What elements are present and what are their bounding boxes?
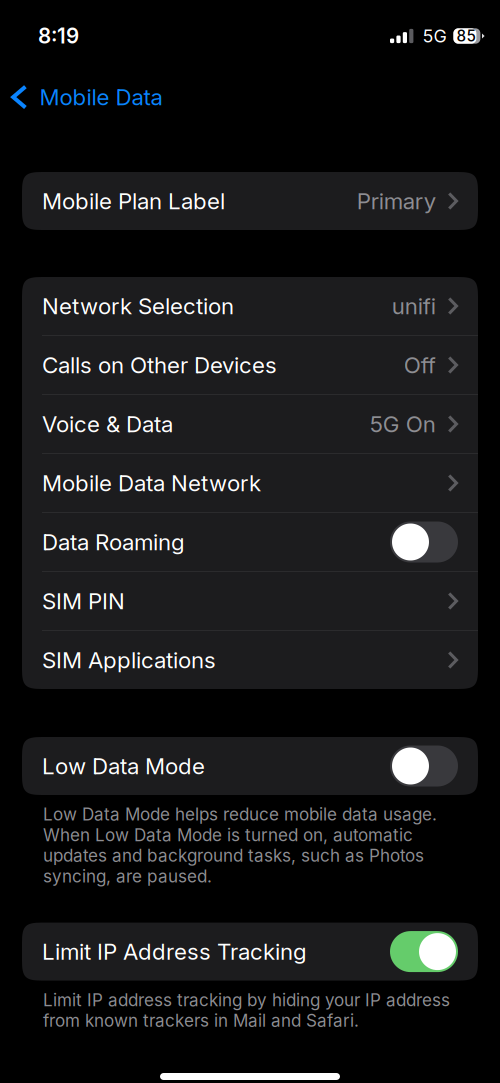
button[interactable]: Low Data Mode <box>22 737 478 795</box>
staticText: Limit IP Address Tracking <box>42 938 307 965</box>
staticText: Calls on Other Devices <box>42 351 277 378</box>
staticText: Low Data Mode helps reduce mobile data u… <box>43 804 437 887</box>
button[interactable]: SIM PIN <box>22 572 478 630</box>
staticText: unifi <box>392 292 436 319</box>
button[interactable]: Back to Mobile Data <box>0 72 190 122</box>
staticText: 5G <box>422 25 446 47</box>
staticText: Primary <box>357 187 436 214</box>
staticText: Data Roaming <box>42 528 185 555</box>
staticText: Mobile Plan Label <box>42 187 225 214</box>
button[interactable]: Mobile Plan Label <box>22 172 478 230</box>
staticText: Off <box>404 351 436 378</box>
staticText: 85 <box>456 27 475 45</box>
staticText: SIM PIN <box>42 587 125 614</box>
staticText: Voice & Data <box>42 410 173 437</box>
button[interactable]: Voice & Data <box>22 395 478 453</box>
staticText: Network Selection <box>42 292 234 319</box>
button[interactable]: SIM Applications <box>22 631 478 689</box>
button[interactable]: Network Selection <box>22 277 478 335</box>
staticText: SIM Applications <box>42 646 216 673</box>
button[interactable]: Calls on Other Devices <box>22 336 478 394</box>
staticText: Limit IP address tracking by hiding your… <box>43 990 450 1031</box>
staticText: Mobile Data Network <box>42 469 261 496</box>
staticText: Mobile Data <box>39 83 162 110</box>
staticText: 5G On <box>370 410 436 437</box>
button[interactable]: Limit IP Address Tracking <box>22 923 478 981</box>
staticText: 8:19 <box>38 23 79 48</box>
button[interactable]: Mobile Data Network <box>22 454 478 512</box>
button[interactable]: Data Roaming <box>22 513 478 571</box>
staticText: Low Data Mode <box>42 752 205 779</box>
